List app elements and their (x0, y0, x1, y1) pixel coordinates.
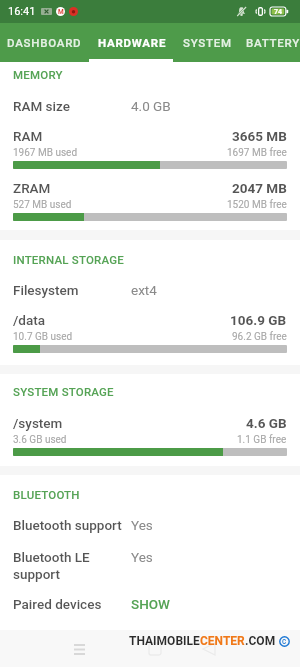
button[interactable]: Bluetooth LE support (0, 549, 300, 583)
staticText: 527 MB used (13, 199, 227, 211)
staticText: 1697 MB free (227, 147, 287, 159)
button[interactable]: SYSTEM (175, 23, 239, 62)
staticText: /system (13, 415, 246, 431)
staticText: 3.6 GB used (13, 434, 237, 446)
staticText: 1967 MB used (13, 147, 227, 159)
button[interactable]: DASHBOARD (1, 23, 88, 62)
button[interactable]: BATTERY (242, 23, 300, 62)
staticText: 96.2 GB free (232, 331, 287, 343)
button[interactable]: Recents (62, 632, 96, 666)
staticText: 3665 MB (232, 128, 287, 144)
staticText: .COM (245, 634, 276, 648)
staticText: 4.0 GB (131, 98, 171, 114)
button[interactable]: Home (141, 635, 169, 663)
staticText: /data (13, 312, 230, 328)
button[interactable]: Paired devices (0, 596, 300, 612)
staticText: 1520 MB free (227, 199, 287, 211)
button[interactable]: HARDWARE (88, 23, 176, 62)
staticText: THAIMOBILE (129, 634, 200, 648)
staticText: HARDWARE (98, 36, 167, 49)
staticText: 1.1 GB free (237, 434, 287, 446)
staticText: BLUETOOTH (13, 488, 80, 501)
staticText: MEMORY (13, 68, 63, 81)
staticText: SYSTEM STORAGE (13, 385, 114, 398)
staticText: SHOW (131, 596, 170, 612)
button[interactable]: /data (0, 312, 300, 353)
staticText: M (58, 8, 64, 16)
button[interactable]: Bluetooth support (0, 517, 300, 533)
button[interactable]: /system (0, 415, 300, 456)
staticText: 10.7 GB used (13, 331, 232, 343)
staticText: Yes (131, 517, 153, 533)
staticText: Paired devices (13, 596, 123, 612)
staticText: 106.9 GB (230, 312, 287, 328)
staticText: Bluetooth LE support (13, 549, 123, 583)
staticText: RAM size (13, 98, 123, 114)
staticText: SYSTEM (183, 36, 232, 49)
staticText: Bluetooth support (13, 517, 123, 533)
staticText: DASHBOARD (7, 36, 82, 49)
button[interactable]: ZRAM (0, 180, 300, 221)
button[interactable]: Filesystem (0, 282, 300, 298)
staticText: 4.6 GB (246, 415, 287, 431)
staticText: Filesystem (13, 282, 123, 298)
staticText: Yes (131, 549, 153, 565)
staticText: CENTER (200, 634, 245, 648)
staticText: C (282, 638, 287, 646)
staticText: ext4 (131, 282, 157, 298)
button[interactable]: Back (195, 635, 223, 663)
staticText: RAM (13, 128, 232, 144)
staticText: INTERNAL STORAGE (13, 253, 124, 266)
staticText: ZRAM (13, 180, 232, 196)
button[interactable]: RAM (0, 128, 300, 169)
button[interactable]: RAM size (0, 98, 300, 114)
staticText: 74 (274, 8, 283, 16)
staticText: BATTERY (246, 36, 300, 49)
staticText: 16:41 (8, 5, 36, 18)
staticText: 2047 MB (232, 180, 287, 196)
